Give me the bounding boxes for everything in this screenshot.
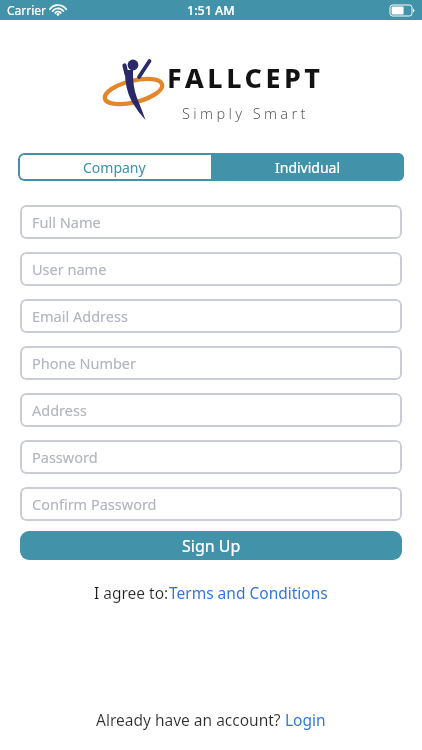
button[interactable]: Phone Number	[20, 346, 402, 380]
button[interactable]: Email Address	[20, 299, 402, 333]
staticText: Full Name	[32, 212, 101, 232]
staticText: Already have an account?	[96, 709, 285, 730]
staticText: FALLCEPT	[167, 59, 324, 96]
button[interactable]: Company	[18, 153, 211, 181]
button[interactable]: Terms and Conditions	[169, 582, 328, 603]
button[interactable]: Individual	[211, 153, 404, 181]
staticText: Email Address	[32, 306, 128, 326]
staticText: Confirm Password	[32, 494, 157, 514]
button[interactable]: Login	[285, 709, 326, 730]
staticText: Address	[32, 400, 87, 420]
button[interactable]: Confirm Password	[20, 487, 402, 521]
staticText: Terms and Conditions	[169, 582, 328, 603]
staticText: User name	[32, 259, 107, 279]
button[interactable]: Sign Up	[20, 531, 402, 560]
staticText: Simply Smart	[182, 103, 309, 123]
button[interactable]: Address	[20, 393, 402, 427]
button[interactable]: User name	[20, 252, 402, 286]
button[interactable]: Password	[20, 440, 402, 474]
staticText: I agree to:	[94, 582, 169, 603]
staticText: Login	[285, 709, 326, 730]
staticText: Sign Up	[182, 535, 241, 557]
staticText: Company	[83, 158, 146, 177]
staticText: Password	[32, 447, 98, 467]
button[interactable]: Full Name	[20, 205, 402, 239]
staticText: 1:51 AM	[187, 2, 235, 19]
staticText: Carrier	[7, 2, 47, 18]
staticText: Phone Number	[32, 353, 137, 373]
staticText: Individual	[275, 158, 341, 177]
